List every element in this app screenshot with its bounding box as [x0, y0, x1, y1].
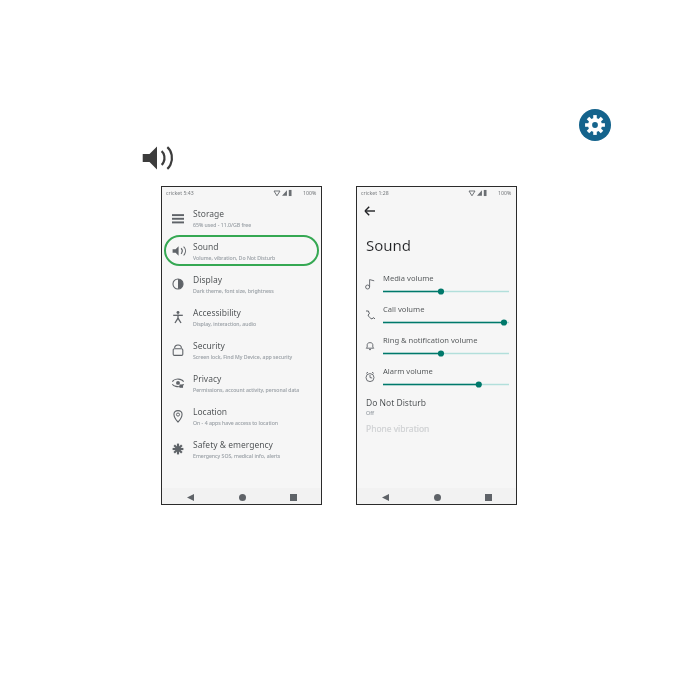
button[interactable]: Ring & notification volume: [356, 330, 517, 361]
button[interactable]: Back: [183, 490, 197, 504]
staticText: Display: [193, 274, 222, 286]
button[interactable]: Do Not Disturb: [356, 395, 517, 416]
staticText: Do Not Disturb: [366, 397, 426, 409]
staticText: Security: [193, 340, 225, 352]
staticText: Permissions, account activity, personal …: [193, 386, 300, 393]
staticText: 100%: [498, 189, 512, 196]
button[interactable]: Display: [164, 268, 319, 299]
staticText: 65% used - 11.0/GB free: [193, 221, 252, 228]
button[interactable]: Back: [378, 490, 392, 504]
button[interactable]: Storage: [164, 202, 319, 233]
staticText: Media volume: [383, 273, 434, 283]
staticText: cricket 1:28: [361, 189, 389, 196]
staticText: Off: [366, 409, 374, 416]
staticText: On - 4 apps have access to location: [193, 419, 279, 426]
staticText: Display, interaction, audio: [193, 320, 257, 327]
staticText: Alarm volume: [383, 366, 433, 376]
staticText: cricket 5:43: [166, 189, 194, 196]
staticText: Sound: [193, 241, 219, 253]
button[interactable]: Recents: [481, 490, 495, 504]
button[interactable]: Home: [235, 490, 249, 504]
staticText: Call volume: [383, 304, 425, 314]
staticText: Privacy: [193, 373, 222, 385]
staticText: Safety & emergency: [193, 439, 273, 451]
staticText: Sound: [366, 235, 412, 255]
button[interactable]: Home: [430, 490, 444, 504]
button[interactable]: Call volume: [356, 299, 517, 330]
button[interactable]: Security: [164, 334, 319, 365]
staticText: Location: [193, 406, 228, 418]
button[interactable]: Recents: [286, 490, 300, 504]
button[interactable]: Location: [164, 400, 319, 431]
button[interactable]: Sound: [164, 235, 319, 266]
button[interactable]: Privacy: [164, 367, 319, 398]
staticText: 100%: [303, 189, 317, 196]
button[interactable]: Back: [362, 203, 378, 219]
staticText: Ring & notification volume: [383, 335, 478, 345]
staticText: Dark theme, font size, brightness: [193, 287, 274, 294]
staticText: Volume, vibration, Do Not Disturb: [193, 254, 276, 261]
button[interactable]: Alarm volume: [356, 361, 517, 392]
button[interactable]: Volume: [140, 141, 174, 175]
button[interactable]: Media volume: [356, 268, 517, 299]
staticText: Phone vibration: [366, 423, 430, 435]
staticText: Emergency SOS, medical info, alerts: [193, 452, 281, 459]
staticText: Screen lock, Find My Device, app securit…: [193, 353, 293, 360]
button[interactable]: Accessibility: [164, 301, 319, 332]
button[interactable]: Settings: [575, 105, 615, 145]
staticText: Accessibility: [193, 307, 241, 319]
button[interactable]: Safety & emergency: [164, 433, 319, 464]
staticText: Storage: [193, 208, 225, 220]
